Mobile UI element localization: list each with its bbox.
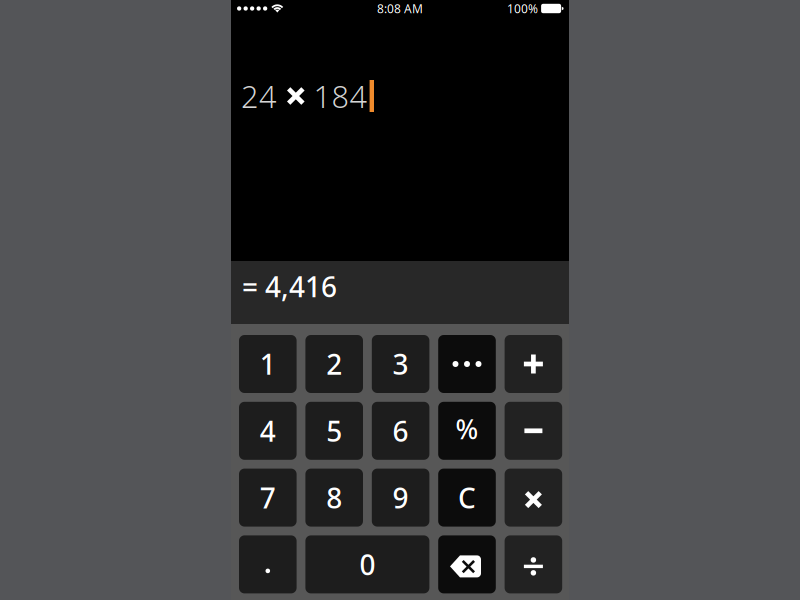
button[interactable]: 8 — [305, 469, 363, 527]
staticText: 9 — [393, 479, 409, 516]
button[interactable]: Multiply — [505, 469, 562, 527]
staticText: 184 — [314, 76, 368, 116]
staticText: 6 — [393, 412, 409, 449]
staticText: = 4,416 — [242, 268, 337, 305]
button[interactable]: 0 — [305, 535, 429, 593]
staticText: C — [458, 479, 476, 516]
button[interactable]: 6 — [372, 402, 429, 460]
button[interactable]: Delete — [438, 535, 496, 593]
button[interactable]: Clear — [438, 469, 496, 527]
staticText: 8:08 AM — [377, 0, 423, 16]
button[interactable]: Decimal point — [239, 535, 297, 593]
staticText: 100% — [507, 0, 538, 16]
staticText: 24 — [241, 76, 277, 116]
staticText: 4 — [260, 412, 276, 449]
button[interactable]: More functions — [438, 335, 496, 393]
button[interactable]: Add — [505, 335, 562, 393]
staticText: 3 — [393, 345, 409, 383]
button[interactable]: 4 — [239, 402, 297, 460]
button[interactable]: Subtract — [505, 402, 562, 460]
button[interactable]: Divide — [505, 535, 562, 593]
staticText: 8 — [326, 479, 342, 516]
button[interactable]: 5 — [305, 402, 363, 460]
staticText: 7 — [260, 479, 276, 516]
button[interactable]: 9 — [372, 469, 429, 527]
button[interactable]: 7 — [239, 469, 297, 527]
staticText: 0 — [359, 546, 375, 583]
button[interactable]: 1 — [239, 335, 297, 393]
button[interactable]: 2 — [305, 335, 363, 393]
staticText: % — [455, 411, 478, 446]
button[interactable]: Percent — [438, 402, 496, 460]
button[interactable]: 3 — [372, 335, 429, 393]
staticText: 2 — [326, 345, 342, 383]
staticText: 1 — [260, 345, 276, 383]
staticText: 5 — [326, 412, 342, 449]
